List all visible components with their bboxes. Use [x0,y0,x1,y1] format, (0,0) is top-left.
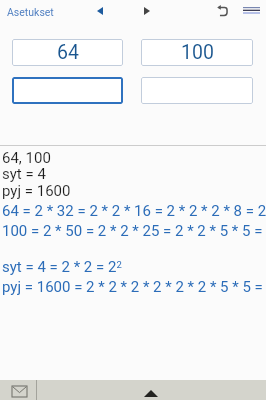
staticText: 64, 100 [2,149,51,167]
staticText: pyj = 1600 [2,182,71,200]
button[interactable] [12,77,123,104]
staticText: syt = 4 = 2 * 2 = 22 [2,258,122,276]
staticText: Asetukset [7,6,54,18]
staticText: 100 [181,41,214,64]
button[interactable]: Previous [89,0,111,21]
button[interactable]: Mail [0,380,36,400]
button[interactable]: Undo [211,0,233,21]
staticText: syt = 4 [2,165,46,183]
staticText: 64 [57,41,79,64]
button[interactable]: Next [136,0,158,21]
button[interactable]: 64 [12,39,123,66]
button[interactable]: Collapse keyboard [37,380,266,400]
button[interactable]: Menu [240,0,263,21]
staticText: 100 = 2 * 50 = 2 * 2 * 25 = 2 * 2 * 5 * … [2,222,266,240]
button[interactable]: 100 [141,39,253,66]
staticText: pyj = 1600 = 2 * 2 * 2 * 2 * 2 * 2 * 5 *… [2,278,266,296]
staticText: 64 = 2 * 32 = 2 * 2 * 16 = 2 * 2 * 2 * 8… [2,202,266,220]
button[interactable]: Asetukset [7,6,54,18]
button[interactable] [141,77,253,104]
